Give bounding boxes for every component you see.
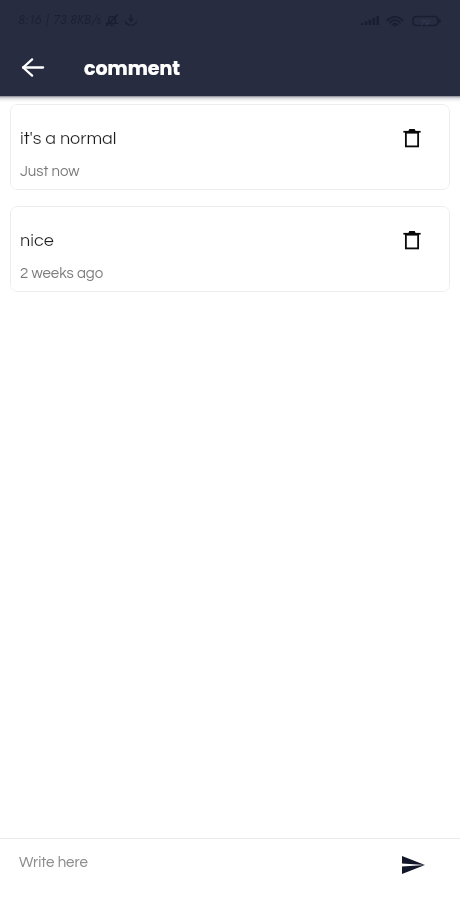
button[interactable]: it's a normal: [10, 104, 450, 190]
button[interactable]: Write here: [0, 839, 385, 900]
staticText: it's a normal: [20, 129, 117, 148]
staticText: comment: [84, 55, 181, 82]
button[interactable]: nice: [10, 206, 450, 292]
button[interactable]: Delete comment: [392, 220, 432, 260]
staticText: 8:16 | 73.8KB/s: [18, 10, 102, 29]
staticText: 79: [420, 16, 430, 26]
button[interactable]: Send: [390, 842, 436, 888]
staticText: Write here: [19, 855, 88, 870]
button[interactable]: Delete comment: [392, 118, 432, 158]
button[interactable]: Back: [10, 44, 56, 90]
staticText: nice: [20, 231, 54, 250]
staticText: 2 weeks ago: [20, 266, 104, 281]
staticText: Just now: [20, 164, 80, 179]
